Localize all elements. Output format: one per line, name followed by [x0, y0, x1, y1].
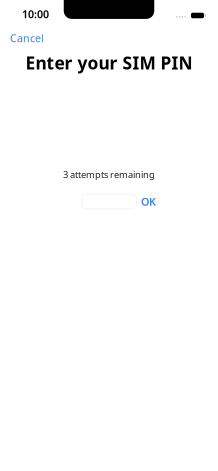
- staticText: 3 attempts remaining: [63, 168, 155, 181]
- button[interactable]: Cancel: [0, 27, 54, 49]
- staticText: Enter your SIM PIN: [25, 51, 192, 74]
- staticText: Cancel: [10, 31, 44, 45]
- staticText: 10:00: [22, 7, 49, 21]
- button[interactable]: OK: [136, 191, 161, 212]
- staticText: OK: [141, 194, 156, 209]
